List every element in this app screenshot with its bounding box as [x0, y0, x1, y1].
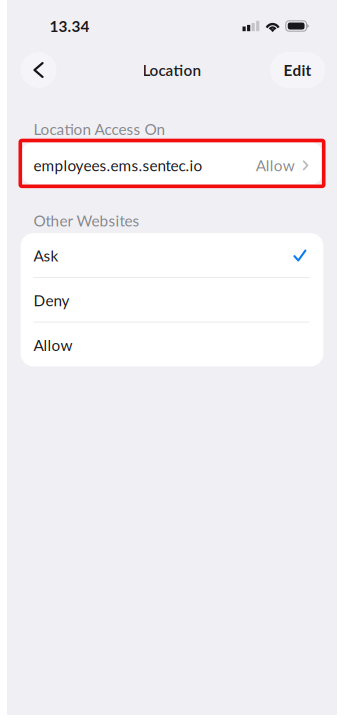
staticText: Edit [283, 61, 311, 79]
staticText: Location [142, 61, 201, 79]
button[interactable]: Edit [270, 52, 325, 88]
staticText: employees.ems.sentec.io [34, 156, 203, 175]
button[interactable]: Ask [21, 233, 323, 277]
staticText: Other Websites [34, 211, 140, 230]
button[interactable]: Deny [21, 278, 323, 322]
button[interactable]: employees.ems.sentec.io [7, 142, 337, 184]
staticText: Allow [256, 156, 295, 175]
staticText: Allow [34, 336, 73, 354]
staticText: Deny [34, 291, 70, 309]
button[interactable]: Allow [21, 322, 323, 366]
staticText: Location Access On [34, 120, 166, 138]
staticText: Ask [34, 246, 59, 265]
staticText: 13.34 [49, 17, 89, 35]
button[interactable]: Back [20, 52, 56, 88]
